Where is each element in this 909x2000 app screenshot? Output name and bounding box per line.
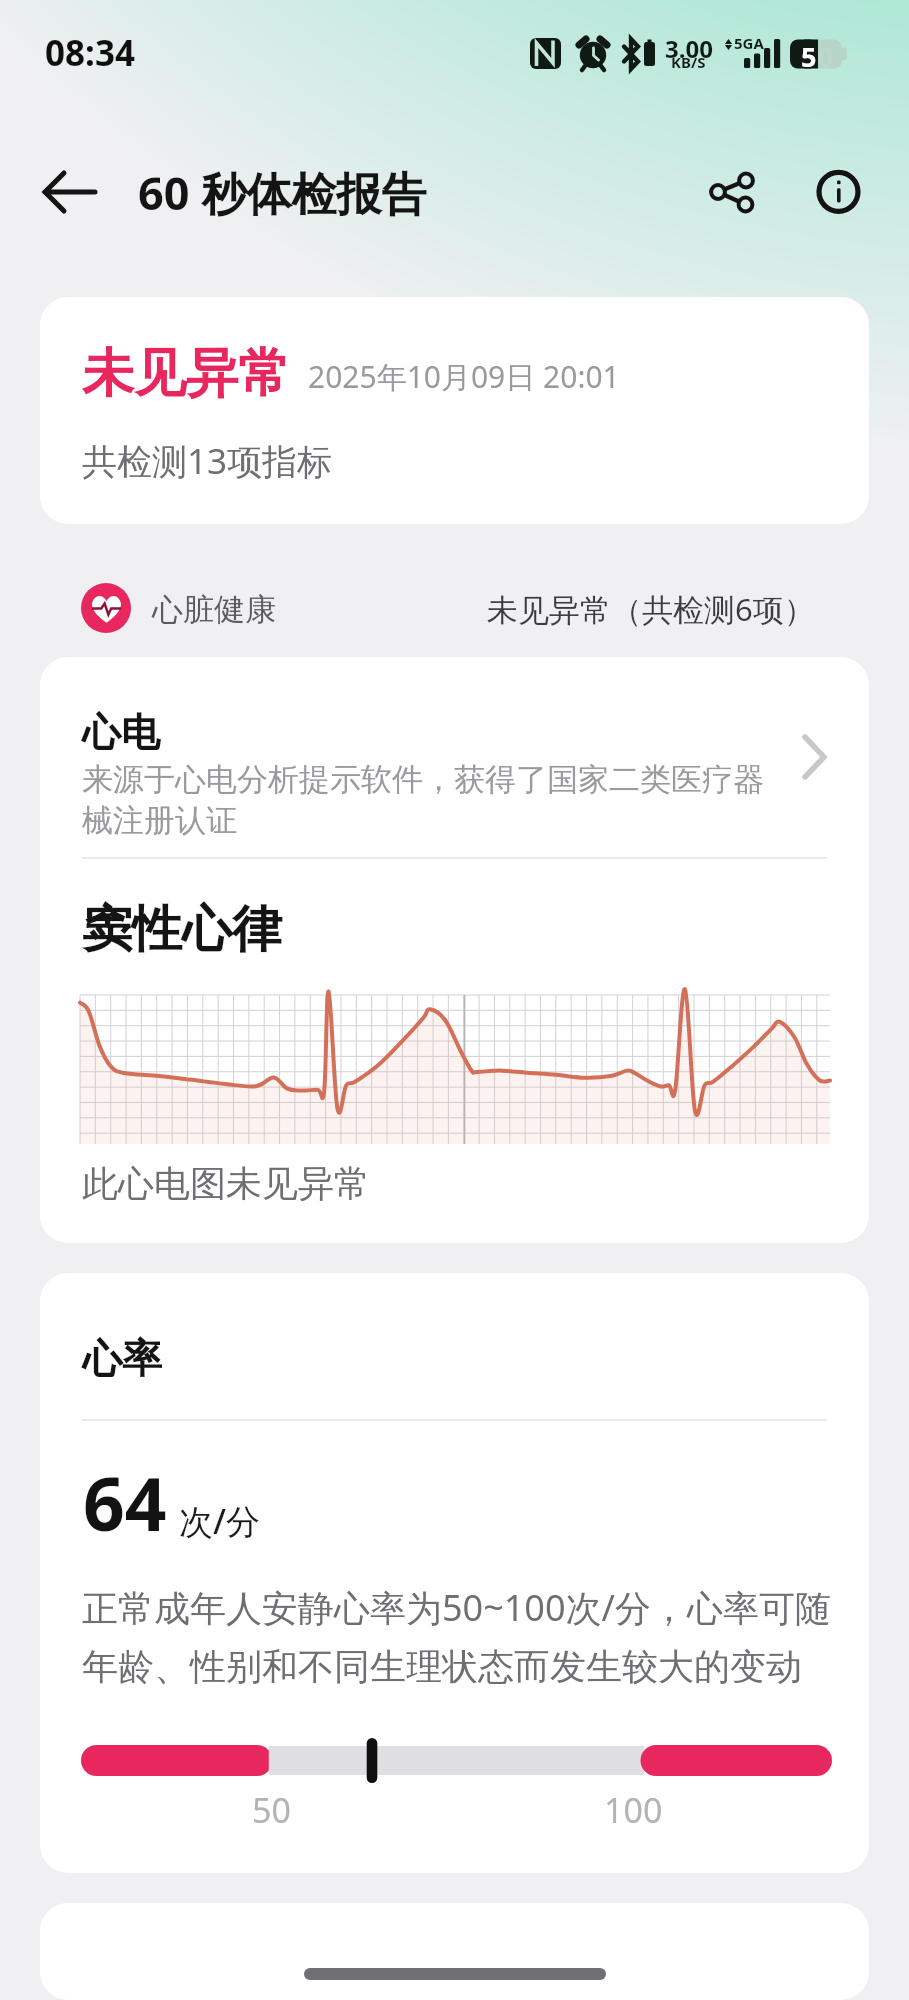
staticText: 2025年10月09日 20:01: [308, 356, 620, 397]
staticText: 共检测13项指标: [82, 437, 333, 485]
button[interactable]: Share: [696, 154, 772, 230]
staticText: 未见异常（共检测6项）: [487, 588, 815, 630]
staticText: 心电: [82, 708, 160, 757]
staticText: 5: [801, 38, 817, 75]
staticText: 正常成年人安静心率为50~100次/分，心率可随年龄、性别和不同生理状态而发生较…: [82, 1583, 834, 1689]
staticText: 次/分: [179, 1498, 261, 1544]
staticText: 来源于心电分析提示软件，获得了国家二类医疗器械注册认证: [82, 760, 772, 840]
staticText: 0: [818, 38, 834, 75]
staticText: 心脏健康: [152, 590, 276, 629]
staticText: 5GA: [734, 33, 764, 53]
button[interactable]: 心电: [40, 657, 869, 857]
button[interactable]: Back: [28, 150, 112, 234]
staticText: 此心电图未见异常: [82, 1161, 370, 1206]
staticText: 08:34: [45, 29, 135, 77]
staticText: 64: [83, 1453, 167, 1552]
staticText: 窦性心律: [82, 898, 282, 961]
button[interactable]: Info: [808, 154, 884, 230]
staticText: 50: [252, 1787, 291, 1833]
staticText: 60 秒体检报告: [138, 162, 427, 223]
staticText: 100: [604, 1787, 663, 1833]
staticText: 3.00: [665, 32, 713, 65]
staticText: KB/S: [671, 52, 706, 72]
staticText: 心率: [82, 1333, 162, 1383]
staticText: 未见异常: [82, 341, 290, 407]
